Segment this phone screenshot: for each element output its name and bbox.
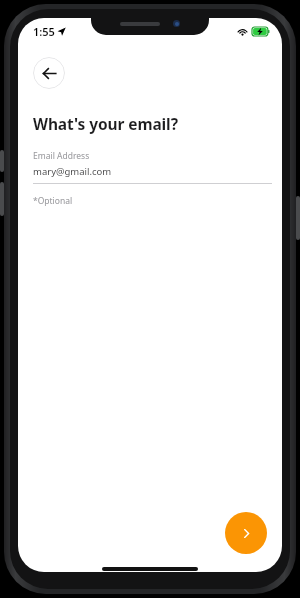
button[interactable]: Back [33,57,65,89]
staticText: Email Address [33,150,90,162]
button[interactable]: Next [225,512,267,554]
button[interactable]: Email Address [33,150,272,184]
staticText: What's your email? [33,113,178,134]
staticText: 1:55 [33,24,55,39]
staticText: mary@gmail.com [33,165,112,178]
staticText: *Optional [33,195,73,207]
